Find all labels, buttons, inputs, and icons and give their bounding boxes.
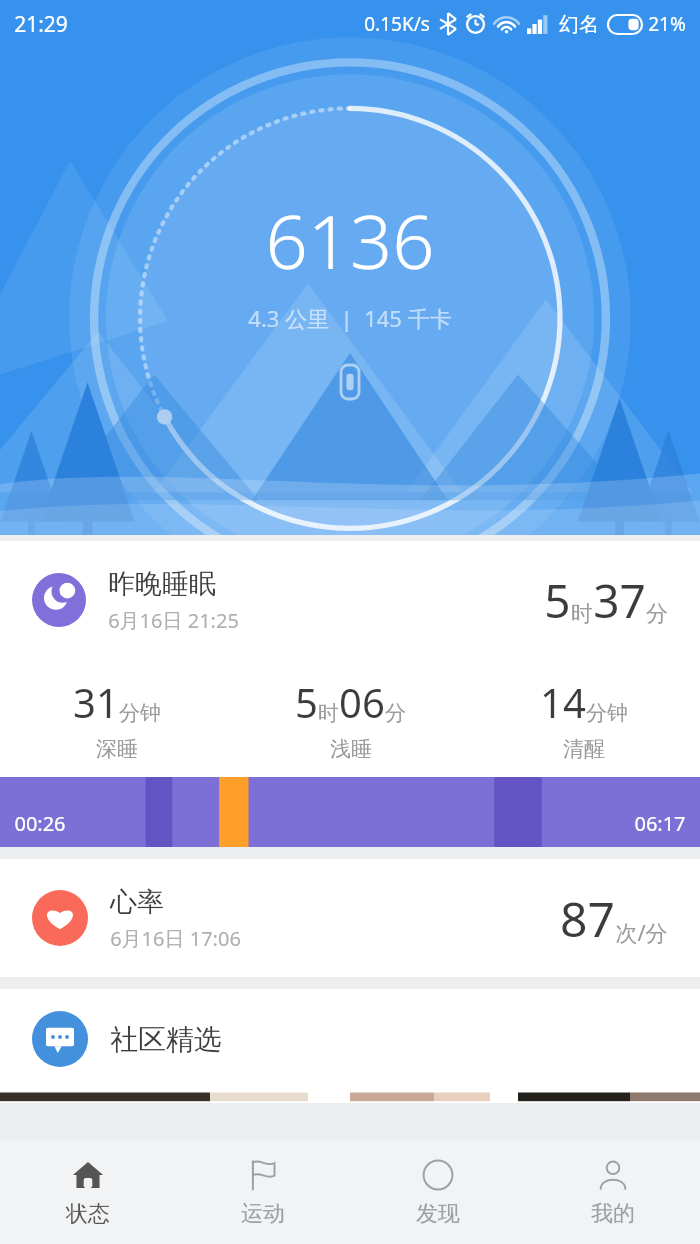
staticText: 分钟 xyxy=(586,700,628,726)
staticText: 时 xyxy=(571,600,593,628)
staticText: 时 xyxy=(318,700,339,726)
button[interactable]: 状态 xyxy=(0,1140,175,1244)
staticText: 87 xyxy=(560,886,615,951)
staticText: 清醒 xyxy=(563,736,605,762)
button[interactable]: 昨晚睡眠 xyxy=(0,541,700,659)
staticText: 社区精选 xyxy=(110,1022,222,1057)
staticText: 浅睡 xyxy=(330,736,372,762)
staticText: 状态 xyxy=(66,1200,110,1228)
button[interactable]: 发现 xyxy=(350,1140,525,1244)
staticText: 6月16日 17:06 xyxy=(110,925,241,952)
button[interactable]: 心率 xyxy=(0,859,700,977)
staticText: 21% xyxy=(648,11,686,37)
button[interactable]: 5 xyxy=(234,675,467,762)
staticText: 分 xyxy=(646,600,668,628)
staticText: 分 xyxy=(385,700,406,726)
staticText: 幻名 xyxy=(559,12,599,37)
button[interactable]: 31 xyxy=(0,675,234,762)
staticText: 5 xyxy=(295,675,318,729)
staticText: 分钟 xyxy=(119,700,161,726)
staticText: 6136 xyxy=(265,190,435,291)
staticText: 发现 xyxy=(416,1200,460,1228)
staticText: 运动 xyxy=(241,1200,285,1228)
button[interactable]: 00:26 xyxy=(0,777,700,847)
staticText: 06:17 xyxy=(634,810,686,837)
staticText: 14 xyxy=(540,675,586,729)
staticText: 6月16日 21:25 xyxy=(108,607,239,634)
staticText: 心率 xyxy=(110,885,164,919)
staticText: 0.15K/s xyxy=(364,11,430,37)
staticText: 4.3 公里 | 145 千卡 xyxy=(248,303,452,333)
staticText: 06 xyxy=(339,675,385,729)
button[interactable]: 社区精选 xyxy=(0,989,700,1089)
staticText: 我的 xyxy=(591,1200,635,1228)
staticText: 深睡 xyxy=(96,736,138,762)
button[interactable]: 14 xyxy=(467,675,700,762)
button[interactable]: 运动 xyxy=(175,1140,350,1244)
staticText: 次/分 xyxy=(615,917,668,947)
staticText: 37 xyxy=(593,569,646,632)
button[interactable]: 我的 xyxy=(525,1140,700,1244)
staticText: 00:26 xyxy=(14,810,66,837)
staticText: 21:29 xyxy=(14,10,68,39)
staticText: 31 xyxy=(73,675,119,729)
staticText: 昨晚睡眠 xyxy=(108,567,216,601)
staticText: 5 xyxy=(544,569,571,632)
